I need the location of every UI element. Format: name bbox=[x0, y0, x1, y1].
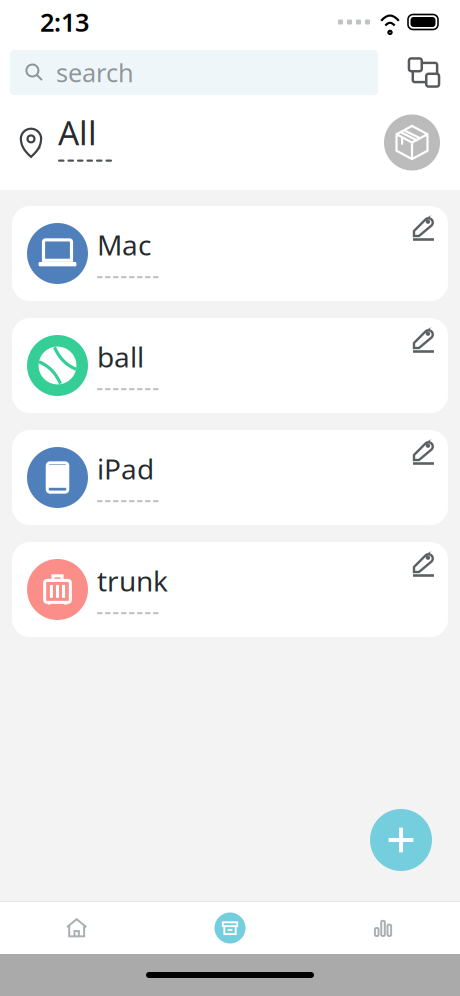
staticText: search bbox=[56, 56, 134, 89]
staticText: ball bbox=[97, 338, 144, 375]
button[interactable]: Home bbox=[0, 902, 153, 954]
staticText: All bbox=[58, 110, 97, 155]
staticText: iPad bbox=[97, 450, 154, 487]
button[interactable]: iPad bbox=[12, 430, 448, 525]
button[interactable]: Group view bbox=[398, 50, 450, 95]
button[interactable]: Packages bbox=[384, 114, 440, 170]
staticText: Mac bbox=[97, 226, 151, 263]
button[interactable]: Rename trunk bbox=[397, 542, 448, 590]
button[interactable]: Mac bbox=[12, 206, 448, 301]
button[interactable]: Items bbox=[153, 902, 307, 954]
button[interactable]: Rename ball bbox=[397, 318, 448, 366]
button[interactable]: Rename iPad bbox=[397, 430, 448, 478]
staticText: trunk bbox=[97, 562, 168, 599]
button[interactable]: Statistics bbox=[307, 902, 460, 954]
button[interactable]: search bbox=[10, 50, 378, 95]
button[interactable]: Rename Mac bbox=[397, 206, 448, 254]
button[interactable]: ball bbox=[12, 318, 448, 413]
button[interactable]: Add item bbox=[370, 809, 432, 871]
staticText: 2:13 bbox=[40, 5, 89, 39]
button[interactable]: trunk bbox=[12, 542, 448, 637]
